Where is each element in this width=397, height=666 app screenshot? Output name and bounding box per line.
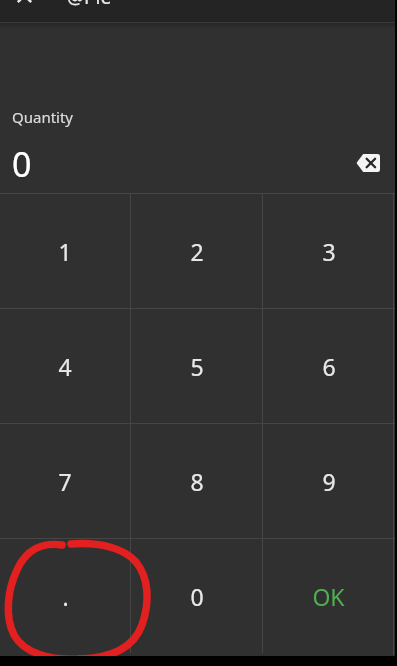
button[interactable]: . <box>0 539 130 653</box>
button[interactable]: 1 <box>0 194 130 308</box>
staticText: 3 <box>322 236 336 267</box>
button[interactable]: 3 <box>263 194 394 308</box>
staticText: Quantity <box>12 107 74 127</box>
staticText: 4 <box>58 351 72 382</box>
button[interactable]: 4 <box>0 309 130 423</box>
button[interactable]: 5 <box>131 309 262 423</box>
staticText: OK <box>312 581 345 612</box>
staticText: 5 <box>190 351 204 382</box>
staticText: 0 <box>190 581 204 612</box>
staticText: 1 <box>58 236 72 267</box>
button[interactable]: Backspace <box>348 144 388 182</box>
button[interactable]: 2 <box>131 194 262 308</box>
staticText: 2 <box>190 236 204 267</box>
staticText: 7 <box>58 466 72 497</box>
staticText: 8 <box>190 466 204 497</box>
button[interactable]: Close <box>6 0 42 6</box>
staticText: . <box>62 581 69 612</box>
staticText: 0 <box>12 141 32 187</box>
button[interactable]: 6 <box>263 309 394 423</box>
staticText: 9 <box>322 466 336 497</box>
button[interactable]: 0 <box>131 539 262 653</box>
button[interactable]: 8 <box>131 424 262 538</box>
staticText: @Pie <box>67 0 112 6</box>
staticText: 6 <box>322 351 336 382</box>
button[interactable]: 9 <box>263 424 394 538</box>
button[interactable]: 7 <box>0 424 130 538</box>
button[interactable]: OK <box>263 539 394 653</box>
